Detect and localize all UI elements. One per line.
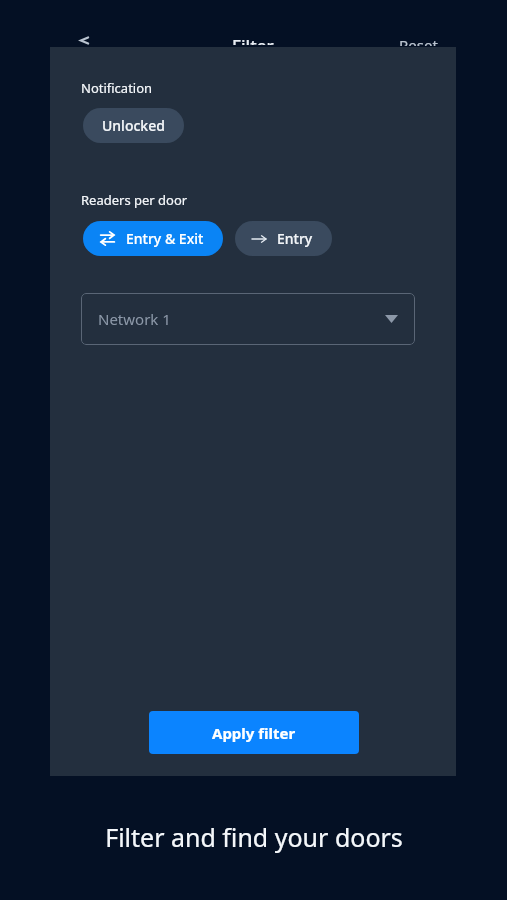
staticText: Entry xyxy=(277,229,313,248)
staticText: Filter xyxy=(232,34,274,45)
staticText: Unlocked xyxy=(102,116,165,135)
button[interactable]: Network 1 xyxy=(81,293,415,345)
button[interactable]: Reset xyxy=(399,35,438,46)
staticText: Notification xyxy=(81,79,153,97)
staticText: Network 1 xyxy=(98,309,385,329)
staticText: Reset xyxy=(399,35,438,46)
staticText: Readers per door xyxy=(81,191,188,209)
button[interactable]: Apply filter xyxy=(149,711,359,754)
staticText: Filter and find your doors xyxy=(105,820,403,854)
button[interactable]: Entry xyxy=(235,221,332,256)
staticText: Apply filter xyxy=(212,723,296,743)
button[interactable]: Back xyxy=(72,35,98,46)
button[interactable]: Entry & Exit xyxy=(83,221,223,256)
button[interactable]: Unlocked xyxy=(83,108,184,143)
staticText: Entry & Exit xyxy=(126,229,204,248)
